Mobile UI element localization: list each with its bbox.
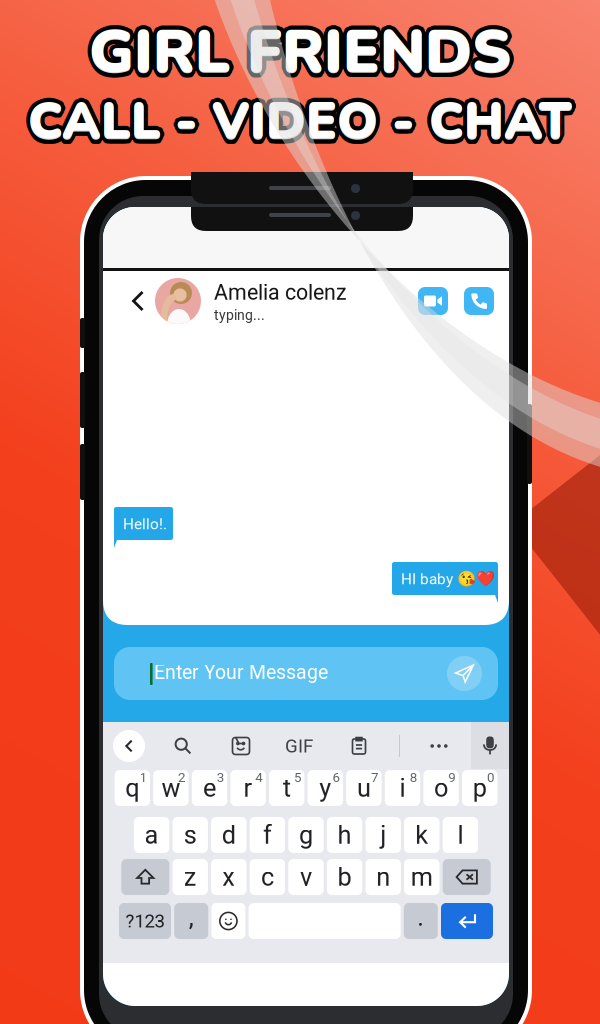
button[interactable]: Video call [418,287,448,315]
button[interactable]: h [327,817,362,853]
button[interactable]: More options [423,730,455,762]
button[interactable]: a [134,817,169,853]
staticText: CALL - VIDEO - CHAT [28,87,572,156]
button[interactable]: Voice call [464,287,494,315]
button[interactable]: Back [119,279,157,323]
staticText: typing... [214,307,265,323]
staticText: CALL - VIDEO - CHAT [26,92,570,161]
button[interactable]: . [404,903,438,939]
button[interactable]: Search [167,730,199,762]
staticText: GIRL FRIENDS [89,15,511,97]
button[interactable]: q [115,770,150,806]
staticText: y [319,773,331,803]
staticText: 2 [178,770,185,785]
staticText: w [161,773,180,803]
button[interactable]: d [211,817,246,853]
button[interactable]: t [269,770,304,806]
button[interactable]: o [423,770,459,806]
staticText: a [145,820,159,850]
staticText: j [380,820,386,850]
staticText: k [415,820,428,850]
button[interactable]: l [443,817,478,853]
staticText: CALL - VIDEO - CHAT [25,90,569,159]
button[interactable]: j [365,817,401,853]
button[interactable] [441,903,493,939]
staticText: HI baby 😘❤️ [401,570,495,588]
button[interactable]: Collapse toolbar [113,730,145,762]
button[interactable]: Stickers [225,730,257,762]
button[interactable]: Clipboard [343,730,375,762]
button[interactable]: z [172,859,208,895]
staticText: 1 [139,770,146,785]
staticText: , [189,902,194,932]
staticText: 8 [410,770,417,785]
button[interactable]: w [153,770,189,806]
button[interactable]: v [288,859,324,895]
staticText: h [338,820,352,850]
staticText: . [417,902,424,932]
staticText: GIRL FRIENDS [93,11,515,93]
staticText: 9 [448,770,455,785]
button[interactable] [211,903,245,939]
button[interactable]: y [308,770,343,806]
staticText: GIRL FRIENDS [85,11,507,93]
staticText: GIRL FRIENDS [89,11,511,93]
staticText: z [184,862,197,892]
staticText: GIF [285,735,313,757]
staticText: GIRL FRIENDS [91,16,513,98]
button[interactable]: i [385,770,420,806]
button[interactable]: c [250,859,285,895]
staticText: Amelia colenz [214,280,347,305]
staticText: n [376,862,390,892]
staticText: GIRL FRIENDS [89,12,511,94]
button[interactable]: Enter Your Message [114,647,498,700]
staticText: s [184,820,197,850]
staticText: GIRL FRIENDS [89,7,511,89]
staticText: ?123 [125,910,164,932]
staticText: i [399,773,405,803]
staticText: u [357,773,371,803]
button[interactable]: u [346,770,382,806]
staticText: CALL - VIDEO - CHAT [30,92,574,161]
staticText: CALL - VIDEO - CHAT [31,90,575,159]
staticText: e [203,773,216,803]
button[interactable]: m [404,859,439,895]
button[interactable]: b [327,859,362,895]
button[interactable]: k [404,817,439,853]
button[interactable]: p [462,770,497,806]
button[interactable] [121,859,169,895]
staticText: CALL - VIDEO - CHAT [28,88,572,157]
staticText: CALL - VIDEO - CHAT [24,87,568,156]
button[interactable]: x [211,859,246,895]
staticText: l [457,820,463,850]
staticText: b [338,862,352,892]
staticText: CALL - VIDEO - CHAT [28,91,572,160]
button[interactable]: e [192,770,227,806]
button[interactable]: g [288,817,324,853]
staticText: p [473,773,487,803]
staticText: CALL - VIDEO - CHAT [32,87,576,156]
button[interactable]: n [365,859,401,895]
staticText: x [222,862,235,892]
staticText: Enter Your Message [154,661,328,684]
staticText: r [244,773,253,803]
button[interactable] [443,859,491,895]
button[interactable]: GIF [281,730,317,762]
button[interactable]: ?123 [119,903,171,939]
button[interactable]: , [174,903,208,939]
staticText: t [283,773,291,803]
staticText: 3 [217,770,224,785]
staticText: CALL - VIDEO - CHAT [28,83,572,152]
staticText: GIRL FRIENDS [92,8,514,90]
button[interactable]: f [250,817,285,853]
staticText: q [125,773,139,803]
staticText: CALL - VIDEO - CHAT [25,84,569,153]
staticText: Hello!. [123,515,167,533]
button[interactable]: Voice input [471,722,509,769]
staticText: m [411,862,433,892]
staticText: v [300,862,312,892]
button[interactable]: s [172,817,208,853]
staticText: GIRL FRIENDS [86,8,508,90]
button[interactable]: r [230,770,266,806]
